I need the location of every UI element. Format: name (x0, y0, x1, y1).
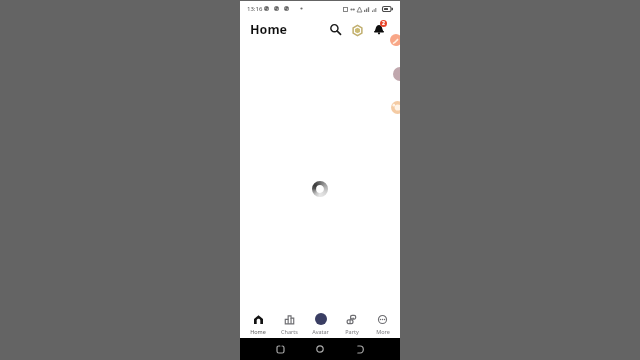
staticText: Party (345, 328, 359, 335)
button[interactable]: Gift (391, 101, 400, 114)
button[interactable]: Search (328, 22, 342, 36)
staticText: 13:16 (247, 5, 263, 13)
staticText: Home (250, 328, 266, 335)
button[interactable]: Notifications (370, 20, 387, 37)
button[interactable]: Charts (274, 309, 305, 338)
button[interactable]: Home (314, 343, 326, 355)
button[interactable]: Profile (393, 67, 400, 81)
staticText: More (376, 328, 390, 335)
button[interactable]: Avatar (305, 309, 336, 338)
button[interactable]: More (367, 309, 398, 338)
button[interactable]: Back (354, 343, 366, 355)
button[interactable]: Party (336, 309, 367, 338)
staticText: Charts (281, 328, 298, 335)
button[interactable]: Home (242, 309, 274, 338)
button[interactable]: Edit (390, 34, 400, 46)
button[interactable]: Rewards (350, 23, 364, 37)
staticText: Avatar (312, 328, 329, 335)
staticText: Home (250, 21, 288, 38)
button[interactable]: Recent apps (274, 343, 286, 355)
staticText: 2 (382, 20, 385, 27)
